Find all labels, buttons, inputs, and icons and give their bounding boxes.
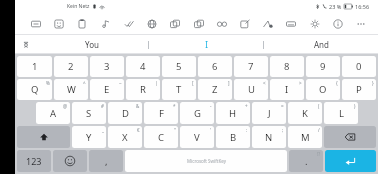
- staticText: 9: [320, 60, 326, 73]
- button[interactable]: GIF: [97, 15, 115, 33]
- button[interactable]: Shift: [17, 126, 70, 148]
- button[interactable]: You: [35, 35, 148, 54]
- button[interactable]: 1: [17, 56, 52, 77]
- button[interactable]: Settings: [306, 15, 324, 33]
- button[interactable]: C: [144, 126, 178, 148]
- button[interactable]: Share: [236, 15, 254, 33]
- button[interactable]: R: [126, 79, 160, 100]
- button[interactable]: V: [180, 126, 214, 148]
- staticText: %: [46, 80, 50, 86]
- button[interactable]: Eyes: [213, 15, 231, 33]
- staticText: A: [50, 107, 57, 120]
- button[interactable]: Camera: [190, 15, 208, 33]
- staticText: You: [85, 39, 99, 50]
- staticText: ": [174, 127, 176, 133]
- button[interactable]: O: [306, 79, 340, 100]
- staticText: -: [210, 103, 212, 109]
- staticText: R: [140, 83, 146, 96]
- button[interactable]: Info: [329, 15, 347, 33]
- staticText: W: [67, 83, 76, 96]
- button[interactable]: Sticker face: [50, 15, 68, 33]
- button[interactable]: N: [252, 126, 286, 148]
- button[interactable]: H: [216, 102, 250, 124]
- staticText: 7: [248, 60, 254, 73]
- button[interactable]: X: [108, 126, 142, 148]
- staticText: G: [194, 107, 201, 120]
- staticText: &: [136, 103, 140, 109]
- button[interactable]: A: [36, 102, 70, 124]
- button[interactable]: Z: [198, 79, 232, 100]
- button[interactable]: Enter: [325, 150, 376, 172]
- button[interactable]: U: [234, 79, 268, 100]
- staticText: I: [285, 83, 289, 96]
- button[interactable]: Edit: [259, 15, 277, 33]
- button[interactable]: D: [108, 102, 142, 124]
- button[interactable]: P: [342, 79, 376, 100]
- button[interactable]: 7: [234, 56, 268, 77]
- button[interactable]: Backspace: [324, 126, 376, 148]
- button[interactable]: W: [54, 79, 88, 100]
- button[interactable]: B: [216, 126, 250, 148]
- staticText: 3: [104, 60, 110, 73]
- button[interactable]: Themes: [166, 15, 184, 33]
- button[interactable]: K: [288, 102, 322, 124]
- staticText: P: [356, 83, 362, 96]
- button[interactable]: 6: [198, 56, 232, 77]
- button[interactable]: M: [288, 126, 322, 148]
- button[interactable]: F: [144, 102, 178, 124]
- button[interactable]: G: [180, 102, 214, 124]
- button[interactable]: Microsoft SwiftKey: [125, 150, 287, 172]
- staticText: C: [158, 131, 165, 144]
- button[interactable]: Y: [72, 126, 106, 148]
- staticText: O: [319, 83, 327, 96]
- button[interactable]: Tasks: [120, 15, 138, 33]
- button[interactable]: E: [90, 79, 124, 100]
- staticText: .: [305, 155, 308, 168]
- staticText: X: [122, 131, 128, 144]
- button[interactable]: Q: [17, 79, 52, 100]
- staticText: #: [101, 103, 104, 109]
- staticText: ;: [282, 127, 284, 133]
- button[interactable]: I: [270, 79, 304, 100]
- button[interactable]: S: [72, 102, 106, 124]
- button[interactable]: 9: [306, 56, 340, 77]
- staticText: L: [339, 107, 344, 120]
- staticText: [: [192, 80, 194, 86]
- button[interactable]: 3: [90, 56, 124, 77]
- button[interactable]: 123: [17, 150, 51, 172]
- button[interactable]: 2: [54, 56, 88, 77]
- button[interactable]: Emoji: [53, 150, 87, 172]
- button[interactable]: L: [324, 102, 358, 124]
- staticText: Q: [31, 83, 39, 96]
- staticText: B: [230, 131, 237, 144]
- button[interactable]: Translate: [143, 15, 161, 33]
- button[interactable]: T: [162, 79, 196, 100]
- button[interactable]: And: [264, 35, 378, 54]
- staticText: 0: [356, 60, 362, 73]
- staticText: 123: [26, 155, 42, 167]
- button[interactable]: .: [289, 150, 323, 172]
- staticText: +: [245, 103, 248, 109]
- staticText: ]: [228, 80, 230, 86]
- staticText: V: [194, 131, 200, 144]
- button[interactable]: Clipboard: [73, 15, 91, 33]
- button[interactable]: 0: [342, 56, 376, 77]
- staticText: E: [104, 83, 110, 96]
- staticText: €: [137, 127, 140, 133]
- button[interactable]: Sticker: [27, 15, 45, 33]
- button[interactable]: J: [252, 102, 286, 124]
- button[interactable]: I: [149, 35, 263, 54]
- button[interactable]: 8: [270, 56, 304, 77]
- button[interactable]: More: [352, 15, 370, 33]
- button[interactable]: Layout: [282, 15, 300, 33]
- staticText: 4: [140, 60, 146, 73]
- staticText: Microsoft SwiftKey: [187, 158, 226, 164]
- staticText: /: [318, 127, 320, 133]
- button[interactable]: 4: [126, 56, 160, 77]
- staticText: :: [246, 127, 248, 133]
- button[interactable]: Expand suggestions: [19, 38, 33, 52]
- staticText: ': [210, 127, 212, 133]
- staticText: T: [176, 83, 182, 96]
- button[interactable]: ,: [89, 150, 123, 172]
- button[interactable]: 5: [162, 56, 196, 77]
